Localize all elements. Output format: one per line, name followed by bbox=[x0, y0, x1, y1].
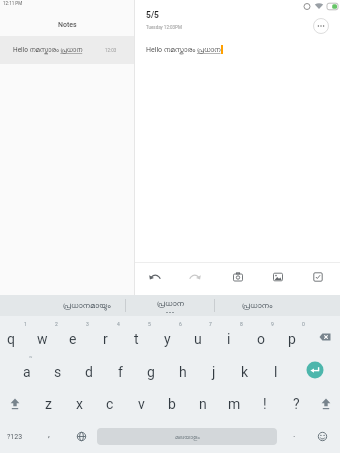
staticText: b bbox=[168, 396, 176, 412]
staticText: i bbox=[227, 331, 231, 347]
button[interactable]: പ്രധാനം bbox=[197, 295, 317, 316]
staticText: w bbox=[37, 331, 48, 347]
button[interactable]: v bbox=[126, 387, 156, 420]
staticText: ?123 bbox=[7, 433, 23, 441]
staticText: Notes bbox=[58, 21, 77, 29]
button[interactable]: q bbox=[0, 323, 26, 355]
button[interactable]: m bbox=[219, 387, 249, 420]
staticText: l bbox=[274, 364, 278, 380]
staticText: 4 bbox=[117, 321, 120, 327]
staticText: e bbox=[69, 331, 77, 347]
staticText: k bbox=[241, 364, 249, 380]
staticText: . bbox=[293, 429, 296, 440]
button[interactable]: ? bbox=[281, 387, 311, 420]
staticText: x bbox=[76, 396, 83, 412]
button[interactable]: പ്രധാന bbox=[126, 295, 214, 312]
staticText: 8 bbox=[240, 321, 243, 327]
staticText: y bbox=[164, 331, 171, 347]
staticText: f bbox=[118, 364, 123, 380]
button[interactable]: r bbox=[90, 323, 120, 355]
button[interactable]: b bbox=[157, 387, 187, 420]
button[interactable]: ?123 bbox=[0, 419, 30, 453]
staticText: 5 bbox=[148, 321, 151, 327]
button[interactable]: i bbox=[214, 323, 244, 355]
button[interactable] bbox=[147, 269, 163, 285]
staticText: q bbox=[7, 331, 15, 347]
button[interactable]: മലയാളം bbox=[97, 428, 277, 445]
staticText: , bbox=[48, 429, 50, 440]
staticText: v bbox=[138, 396, 145, 412]
staticText: h bbox=[179, 364, 187, 380]
button[interactable]: c bbox=[95, 387, 125, 420]
button[interactable] bbox=[310, 419, 334, 453]
staticText: 7 bbox=[209, 321, 212, 327]
button[interactable] bbox=[69, 419, 93, 453]
button[interactable] bbox=[303, 358, 327, 382]
button[interactable]: , bbox=[39, 417, 59, 452]
staticText: ~ bbox=[29, 354, 33, 360]
staticText: Hello നമസ്കാരം പ്രധാന bbox=[146, 46, 221, 54]
staticText: 5/5 bbox=[146, 10, 159, 20]
staticText: g bbox=[147, 364, 155, 380]
staticText: പ്രധാനമായും bbox=[63, 302, 111, 310]
button[interactable] bbox=[309, 321, 340, 353]
button[interactable] bbox=[270, 269, 286, 285]
staticText: j bbox=[212, 364, 216, 380]
staticText: 2 bbox=[55, 321, 58, 327]
staticText: c bbox=[106, 396, 114, 412]
staticText: p bbox=[288, 331, 296, 347]
button[interactable]: u bbox=[183, 323, 213, 355]
staticText: u bbox=[194, 331, 202, 347]
button[interactable]: f bbox=[105, 355, 135, 388]
button[interactable]: ! bbox=[250, 387, 280, 420]
staticText: t bbox=[134, 331, 139, 347]
button[interactable]: d bbox=[74, 355, 104, 388]
button[interactable]: പ്രധാനമായും bbox=[27, 295, 147, 316]
button[interactable]: Hello നമസ്കാരം പ്രധാന bbox=[0, 36, 134, 64]
staticText: 1 bbox=[24, 321, 27, 327]
staticText: 12:03 bbox=[105, 48, 117, 53]
staticText: r bbox=[103, 331, 108, 347]
button[interactable]: k bbox=[230, 355, 260, 388]
button[interactable] bbox=[187, 269, 203, 285]
button[interactable]: t bbox=[121, 323, 151, 355]
staticText: a bbox=[23, 364, 31, 380]
staticText: n bbox=[199, 396, 207, 412]
staticText: ! bbox=[263, 396, 267, 412]
staticText: 6 bbox=[179, 321, 182, 327]
button[interactable]: o bbox=[246, 323, 276, 355]
button[interactable]: p bbox=[277, 323, 307, 355]
staticText: പ്രധാനം bbox=[242, 302, 273, 310]
staticText: 12:11 PM bbox=[3, 1, 23, 6]
button[interactable] bbox=[230, 269, 246, 285]
staticText: d bbox=[85, 364, 93, 380]
staticText: Tuesday 12:03PM bbox=[146, 25, 182, 30]
button[interactable]: h bbox=[168, 355, 198, 388]
button[interactable]: a bbox=[12, 355, 42, 388]
button[interactable]: y bbox=[152, 323, 182, 355]
button[interactable] bbox=[311, 386, 340, 419]
button[interactable] bbox=[310, 269, 326, 285]
button[interactable] bbox=[313, 18, 329, 34]
button[interactable]: x bbox=[64, 387, 94, 420]
button[interactable]: j bbox=[199, 355, 229, 388]
staticText: s bbox=[54, 364, 62, 380]
staticText: z bbox=[45, 396, 52, 412]
button[interactable] bbox=[0, 386, 29, 419]
staticText: m bbox=[228, 396, 241, 412]
staticText: 3 bbox=[86, 321, 89, 327]
staticText: 9 bbox=[271, 321, 274, 327]
button[interactable]: s bbox=[43, 355, 73, 388]
button[interactable]: z bbox=[33, 387, 63, 420]
staticText: Hello നമസ്കാരം പ്രധാന bbox=[13, 46, 83, 54]
staticText: പ്രധാന bbox=[157, 300, 184, 308]
staticText: മലയാളം bbox=[175, 434, 200, 440]
button[interactable]: e bbox=[58, 323, 88, 355]
button[interactable]: n bbox=[188, 387, 218, 420]
button[interactable]: w bbox=[27, 323, 57, 355]
staticText: o bbox=[257, 331, 265, 347]
staticText: ? bbox=[293, 396, 300, 412]
button[interactable]: l bbox=[261, 355, 291, 388]
button[interactable]: g bbox=[136, 355, 166, 388]
